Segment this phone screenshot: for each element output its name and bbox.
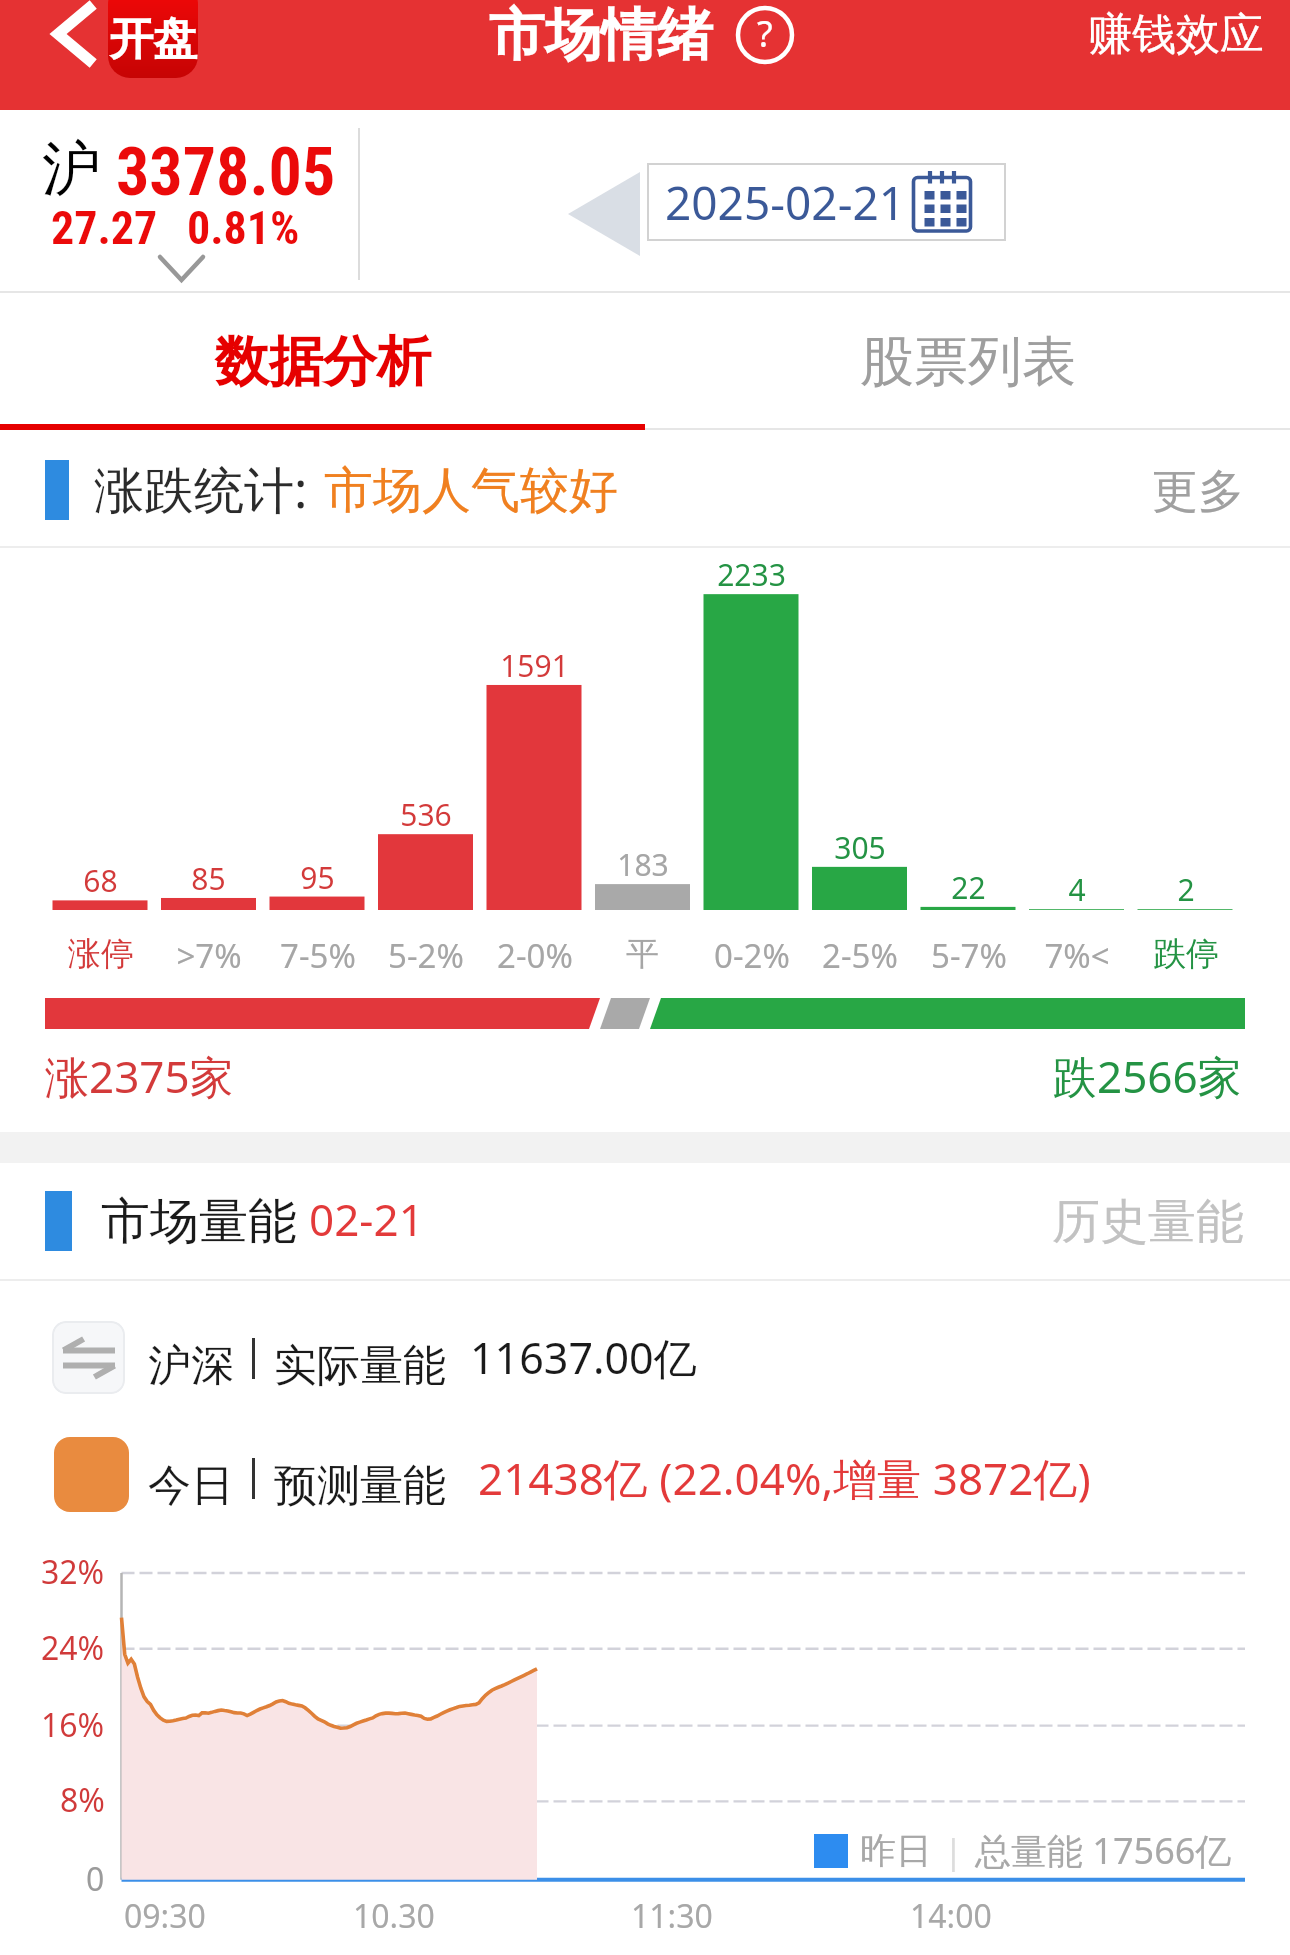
staticText: 536 xyxy=(400,794,452,835)
staticText: 7-5% xyxy=(280,933,356,978)
staticText: 5-2% xyxy=(388,933,464,978)
button[interactable]: 更多 xyxy=(1152,463,1244,521)
staticText: 183 xyxy=(617,844,669,885)
staticText: 涨跌统计: xyxy=(94,455,308,523)
staticText: 11:30 xyxy=(631,1894,713,1938)
button[interactable]: 跌2566家 xyxy=(1053,1046,1242,1106)
button[interactable]: 赚钱效应 xyxy=(1088,0,1264,68)
staticText: 0.81% xyxy=(187,201,300,255)
staticText: 02-21 xyxy=(309,1189,424,1249)
staticText: 沪 xyxy=(42,132,101,206)
button[interactable]: 历史量能 xyxy=(1052,1192,1244,1252)
staticText: 涨停 xyxy=(68,933,134,975)
staticText: 涨2375家 xyxy=(45,1046,234,1106)
staticText: 0-2% xyxy=(714,933,790,978)
button[interactable]: 2025-02-21 xyxy=(665,163,994,241)
staticText: 85 xyxy=(191,858,226,899)
staticText: 2233 xyxy=(717,554,786,595)
staticText: 14:00 xyxy=(910,1894,992,1938)
staticText: 32% xyxy=(41,1550,105,1594)
staticText: 历史量能 xyxy=(1052,1192,1244,1252)
button[interactable]: 数据分析 xyxy=(0,293,645,430)
staticText: 总量能 17566亿 xyxy=(975,1826,1232,1875)
staticText: 2 xyxy=(1177,869,1195,910)
staticText: 68 xyxy=(83,860,118,901)
staticText: 跌停 xyxy=(1153,933,1219,975)
button[interactable] xyxy=(0,1417,1290,1535)
staticText: 5-7% xyxy=(931,933,1007,978)
staticText: 09:30 xyxy=(124,1894,206,1938)
staticText: >7% xyxy=(176,933,242,978)
button[interactable]: 开盘 xyxy=(108,0,198,78)
staticText: 跌2566家 xyxy=(1053,1046,1242,1106)
staticText: 市场人气较好 xyxy=(324,460,618,522)
staticText: 数据分析 xyxy=(215,328,431,396)
staticText: 3378.05 xyxy=(116,134,336,211)
staticText: ? xyxy=(757,9,773,58)
staticText: 27.27 xyxy=(51,201,158,255)
staticText: 1591 xyxy=(500,645,569,686)
staticText: 21438亿 (22.04%,增量 3872亿) xyxy=(478,1448,1091,1508)
staticText: 7%< xyxy=(1044,933,1110,978)
staticText: 11637.00亿 xyxy=(470,1328,697,1387)
staticText: 赚钱效应 xyxy=(1088,7,1264,62)
button[interactable]: Back xyxy=(20,0,126,68)
staticText: 16% xyxy=(41,1703,105,1747)
staticText: 2025-02-21 xyxy=(665,171,906,234)
staticText: 实际量能 xyxy=(274,1339,446,1393)
staticText: 0 xyxy=(86,1857,105,1901)
staticText: 95 xyxy=(300,857,335,898)
staticText: 305 xyxy=(834,827,886,868)
staticText: 24% xyxy=(41,1626,105,1670)
staticText: | xyxy=(944,1828,963,1874)
staticText: 8% xyxy=(60,1778,105,1822)
staticText: 市场情绪 xyxy=(489,0,713,68)
staticText: 市场量能 xyxy=(101,1191,297,1253)
staticText: 22 xyxy=(951,867,986,908)
button[interactable]: 股票列表 xyxy=(645,293,1290,430)
button[interactable]: Expand xyxy=(141,245,221,291)
staticText: 股票列表 xyxy=(860,328,1076,396)
staticText: 2-0% xyxy=(497,933,573,978)
staticText: 预测量能 xyxy=(274,1459,446,1513)
staticText: 更多 xyxy=(1152,463,1244,521)
staticText: 平 xyxy=(626,933,659,975)
staticText: 昨日 xyxy=(860,1828,932,1873)
staticText: 10.30 xyxy=(353,1894,435,1938)
other: Swap market xyxy=(52,1321,125,1394)
staticText: 2-5% xyxy=(822,933,898,978)
button[interactable]: 涨2375家 xyxy=(45,1046,234,1106)
staticText: 4 xyxy=(1068,869,1086,910)
staticText: 开盘 xyxy=(109,12,197,67)
staticText: 沪深 xyxy=(148,1339,234,1393)
button[interactable] xyxy=(0,1299,1290,1417)
button[interactable]: Help xyxy=(734,4,796,66)
staticText: 今日 xyxy=(148,1459,234,1513)
